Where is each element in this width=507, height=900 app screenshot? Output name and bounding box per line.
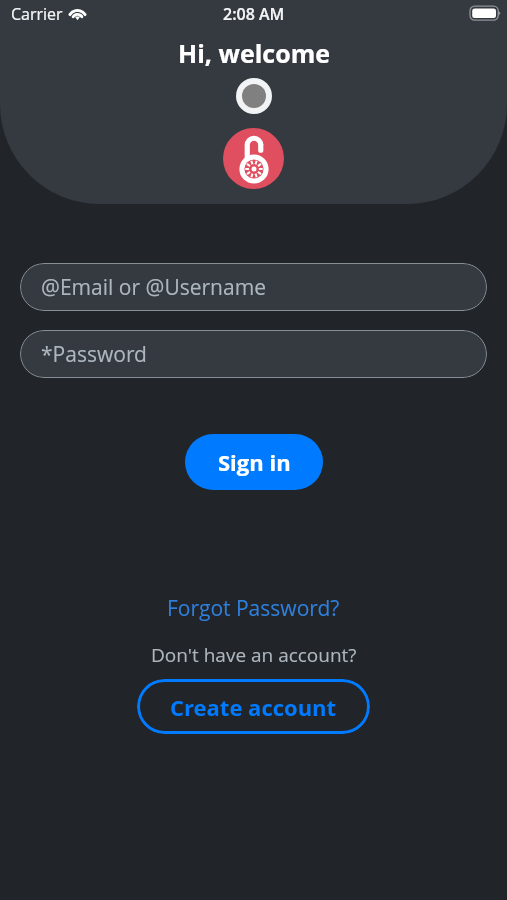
- staticText: Carrier: [11, 3, 63, 25]
- button[interactable]: @Email or @Username: [20, 263, 487, 311]
- staticText: Hi, welcome: [178, 36, 330, 70]
- staticText: *Password: [41, 340, 147, 369]
- button[interactable]: Forgot Password?: [161, 590, 346, 627]
- button[interactable]: Profile photo: [236, 78, 272, 114]
- button[interactable]: *Password: [20, 330, 487, 378]
- staticText: @Email or @Username: [41, 273, 266, 302]
- staticText: Don't have an account?: [151, 642, 357, 668]
- button[interactable]: Sign in: [185, 434, 323, 490]
- staticText: Forgot Password?: [167, 594, 340, 623]
- other: App logo: [223, 128, 284, 189]
- staticText: Sign in: [218, 447, 291, 477]
- staticText: 2:08 AM: [223, 3, 285, 25]
- button[interactable]: Create account: [137, 679, 370, 734]
- staticText: Create account: [170, 692, 337, 722]
